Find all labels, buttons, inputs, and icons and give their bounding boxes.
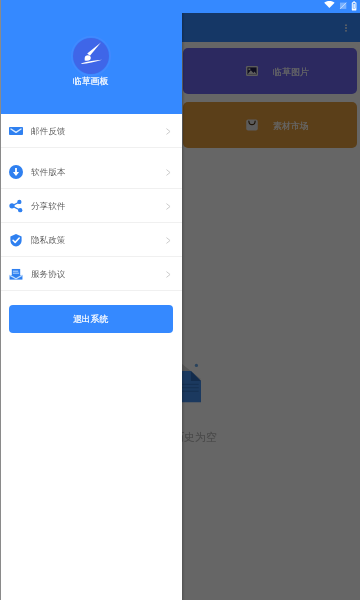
staticText: 素材市场	[273, 120, 309, 131]
button[interactable]: 素材市场	[183, 102, 357, 148]
button[interactable]: 软件版本	[0, 155, 182, 189]
staticText: 邮件反馈	[31, 126, 66, 137]
staticText: 分享软件	[31, 201, 66, 212]
button[interactable]: 分享软件	[0, 189, 182, 223]
staticText: 软件版本	[31, 167, 66, 178]
button[interactable]: 退出系统	[9, 305, 173, 333]
button[interactable]: 服务协议	[0, 257, 182, 291]
button[interactable]: 临草图片	[183, 48, 357, 94]
button[interactable]: 邮件反馈	[0, 114, 182, 148]
button[interactable]: 隐私政策	[0, 223, 182, 257]
staticText: 退出系统	[73, 314, 109, 325]
staticText: 隐私政策	[31, 235, 66, 246]
staticText: 历史为空	[173, 430, 217, 444]
staticText: 服务协议	[31, 269, 66, 280]
button[interactable]: More options	[331, 13, 360, 42]
staticText: 临草图片	[273, 66, 309, 77]
staticText: 临草画板	[73, 76, 109, 87]
